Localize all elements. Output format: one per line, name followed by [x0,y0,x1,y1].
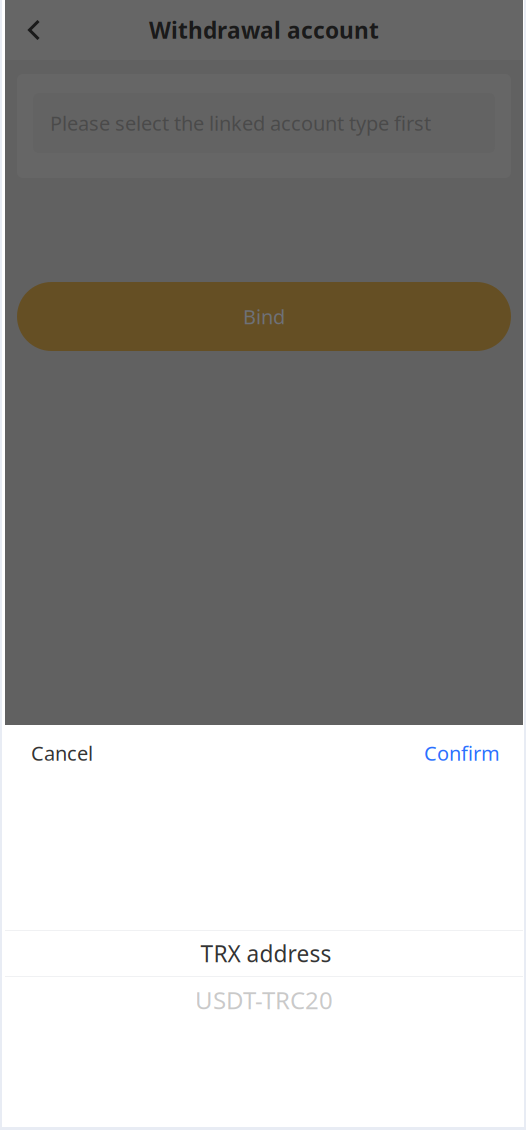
staticText: Please select the linked account type fi… [50,110,431,136]
staticText: Cancel [31,740,93,766]
staticText: Withdrawal account [149,15,379,45]
staticText: USDT-TRC20 [195,984,333,1016]
button[interactable]: Bind [17,282,511,351]
button[interactable]: Confirm [401,725,523,781]
button[interactable]: Please select the linked account type fi… [33,93,495,153]
button[interactable]: TRX address [5,931,523,976]
staticText: Bind [243,303,285,330]
staticText: Confirm [424,740,500,766]
button[interactable]: USDT-TRC20 [5,977,523,1023]
staticText: TRX address [200,938,331,968]
button[interactable]: Cancel [5,725,119,781]
button[interactable]: Back [5,0,63,60]
